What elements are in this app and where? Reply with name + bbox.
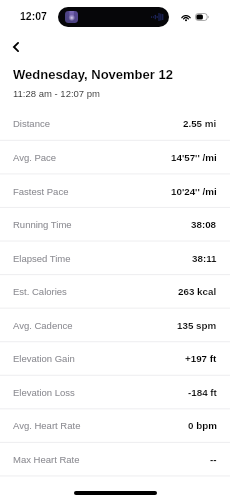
staticText: 2.55 mi (183, 118, 217, 129)
staticText: 11:28 am - 12:07 pm (13, 88, 100, 99)
staticText: 38:11 (192, 253, 217, 264)
button[interactable]: Avg. Pace (0, 140, 230, 174)
staticText: 10'24'' /mi (171, 186, 217, 197)
staticText: Elapsed Time (13, 253, 71, 264)
staticText: -- (210, 454, 217, 465)
staticText: +197 ft (185, 353, 217, 364)
staticText: 38:08 (191, 219, 217, 230)
other: Battery (195, 13, 209, 21)
button[interactable]: Avg. Heart Rate (0, 408, 230, 442)
staticText: 0 bpm (188, 420, 217, 431)
button[interactable]: Fastest Pace (0, 174, 230, 208)
button[interactable]: Est. Calories (0, 274, 230, 308)
staticText: Elevation Gain (13, 353, 75, 364)
staticText: Avg. Heart Rate (13, 420, 81, 431)
button[interactable]: Distance (0, 106, 230, 140)
button[interactable]: Max Heart Rate (0, 442, 230, 476)
staticText: Avg. Cadence (13, 320, 73, 331)
button[interactable]: Back (4, 34, 28, 58)
staticText: Running Time (13, 219, 72, 230)
staticText: 135 spm (177, 320, 217, 331)
other: Wi-Fi (181, 13, 191, 21)
staticText: 12:07 (20, 10, 47, 22)
staticText: Wednesday, November 12 (13, 67, 173, 82)
button[interactable]: Avg. Cadence (0, 308, 230, 342)
staticText: Fastest Pace (13, 186, 69, 197)
staticText: Distance (13, 118, 50, 129)
button[interactable]: Running Time (0, 207, 230, 241)
staticText: Avg. Pace (13, 152, 57, 163)
staticText: Est. Calories (13, 286, 67, 297)
button[interactable]: Elevation Gain (0, 341, 230, 375)
staticText: 263 kcal (178, 286, 217, 297)
staticText: 14'57'' /mi (171, 152, 217, 163)
button[interactable]: Elapsed Time (0, 241, 230, 275)
staticText: Max Heart Rate (13, 454, 80, 465)
staticText: Elevation Loss (13, 387, 75, 398)
staticText: -184 ft (188, 387, 217, 398)
button[interactable]: Elevation Loss (0, 375, 230, 409)
